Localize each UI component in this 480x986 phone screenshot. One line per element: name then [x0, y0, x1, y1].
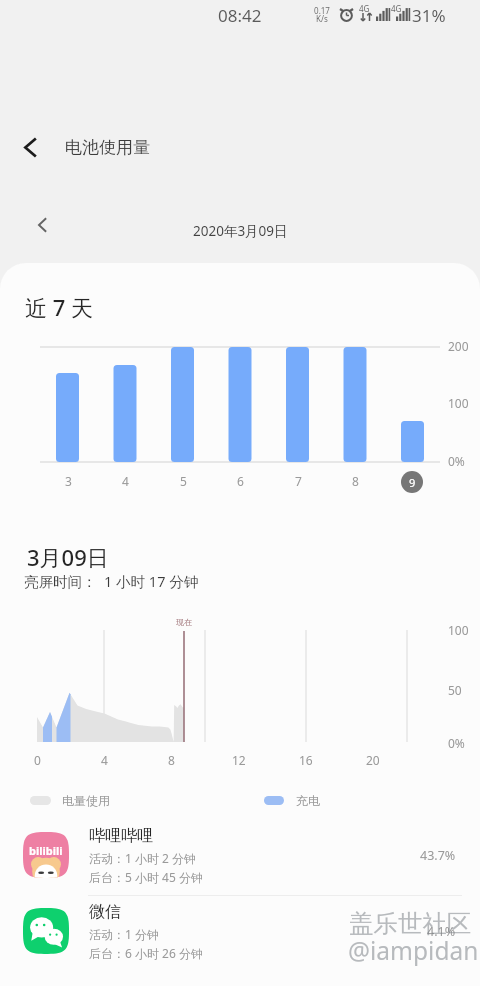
staticText: 电量使用: [62, 793, 110, 808]
button[interactable]: bilibili: [0, 817, 480, 893]
staticText: 4G: [391, 3, 402, 14]
staticText: 12: [232, 752, 246, 768]
staticText: 8: [352, 473, 359, 489]
staticText: 16: [299, 752, 313, 768]
staticText: 3月09日: [27, 542, 109, 572]
button[interactable]: 微信: [0, 893, 480, 969]
staticText: 9: [409, 475, 416, 490]
staticText: 20: [366, 752, 380, 768]
staticText: 100: [448, 622, 469, 638]
staticText: 5: [180, 473, 187, 489]
staticText: 哔哩哔哩: [89, 826, 153, 846]
button[interactable]: Previous day: [25, 208, 59, 242]
staticText: 现在: [176, 617, 192, 627]
staticText: 3: [65, 473, 72, 489]
button[interactable]: Back: [0, 119, 480, 176]
staticText: 200: [448, 338, 469, 354]
staticText: 后台：6 小时 26 分钟: [89, 945, 203, 961]
staticText: 50: [448, 682, 462, 698]
staticText: 0%: [448, 735, 465, 751]
staticText: 充电: [296, 793, 320, 808]
staticText: 0: [34, 752, 41, 768]
staticText: bilibili: [29, 843, 63, 858]
staticText: 31%: [412, 4, 446, 27]
staticText: 0.17 K/s: [314, 5, 330, 24]
staticText: 4: [101, 752, 108, 768]
staticText: 活动：1 分钟: [89, 926, 159, 942]
staticText: 08:42: [218, 4, 262, 27]
staticText: 盖乐世社区: [349, 908, 472, 939]
staticText: 7: [295, 473, 302, 489]
staticText: 电池使用量: [65, 137, 150, 158]
staticText: 6: [237, 473, 244, 489]
staticText: 4G: [359, 3, 370, 14]
staticText: @iampidan1: [348, 934, 480, 967]
staticText: 43.7%: [420, 847, 456, 864]
staticText: 活动：1 小时 2 分钟: [89, 850, 197, 866]
staticText: 近 7 天: [25, 292, 94, 322]
staticText: 2020年3月09日: [193, 222, 288, 240]
staticText: 8: [168, 752, 175, 768]
staticText: 0%: [448, 453, 465, 469]
staticText: 100: [448, 395, 469, 411]
staticText: 亮屏时间： 1 小时 17 分钟: [24, 571, 199, 591]
staticText: 4: [122, 473, 129, 489]
staticText: 后台：5 小时 45 分钟: [89, 869, 203, 885]
staticText: 4.1%: [427, 923, 456, 940]
staticText: 微信: [89, 902, 121, 922]
